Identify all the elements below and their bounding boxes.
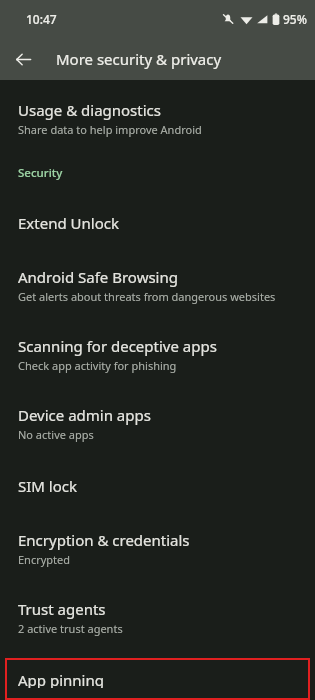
button[interactable]: Back <box>8 44 38 74</box>
button[interactable]: Scanning for deceptive apps <box>0 324 315 385</box>
staticText: More security & privacy <box>56 49 222 69</box>
button[interactable]: Usage & diagnostics <box>0 88 315 149</box>
button[interactable]: Encryption & credentials <box>0 518 315 579</box>
staticText: Android Safe Browsing <box>18 267 178 287</box>
button[interactable]: Extend Unlock <box>0 199 315 247</box>
staticText: Check app activity for phishing <box>18 358 177 373</box>
staticText: Share data to help improve Android <box>18 122 202 137</box>
staticText: Scanning for deceptive apps <box>18 336 217 356</box>
button[interactable]: Android Safe Browsing <box>0 255 315 316</box>
button[interactable]: App pinning <box>5 658 310 700</box>
staticText: Security <box>18 165 63 181</box>
staticText: Trust agents <box>18 599 106 619</box>
staticText: Device admin apps <box>18 405 151 425</box>
button[interactable]: Trust agents <box>0 587 315 648</box>
staticText: 2 active trust agents <box>18 621 123 636</box>
staticText: 10:47 <box>26 11 57 27</box>
button[interactable]: Device admin apps <box>0 393 315 454</box>
staticText: Encryption & credentials <box>18 530 190 550</box>
staticText: SIM lock <box>18 476 77 496</box>
staticText: Extend Unlock <box>18 213 119 233</box>
staticText: 95% <box>283 11 307 27</box>
staticText: Encrypted <box>18 552 71 567</box>
staticText: App pinning <box>18 670 104 688</box>
staticText: No active apps <box>18 427 94 442</box>
staticText: Get alerts about threats from dangerous … <box>18 289 276 304</box>
staticText: Usage & diagnostics <box>18 100 161 120</box>
button[interactable]: SIM lock <box>0 462 315 510</box>
